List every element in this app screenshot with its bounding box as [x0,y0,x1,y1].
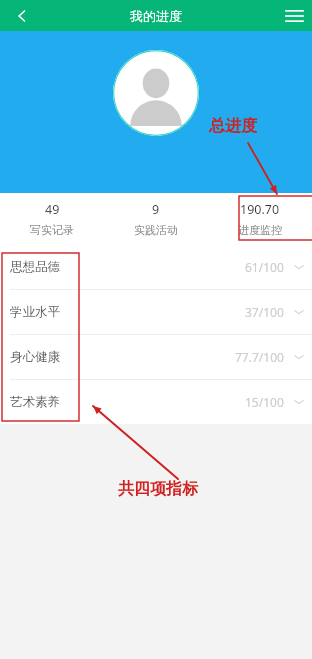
button[interactable]: 9 [104,193,208,245]
staticText: 写实记录 [30,223,74,237]
staticText: 15/100 [245,394,284,410]
button[interactable]: Back [0,0,44,31]
staticText: 共四项指标 [118,479,198,499]
staticText: 61/100 [245,259,284,275]
staticText: 190.70 [240,201,280,218]
staticText: 实践活动 [134,223,178,237]
button[interactable]: 190.70 [208,193,312,245]
staticText: 9 [152,201,160,218]
button[interactable]: 身心健康 [0,335,312,379]
button[interactable]: 49 [0,193,104,245]
staticText: 总进度 [209,116,257,136]
staticText: 身心健康 [10,349,60,365]
staticText: 我的进度 [130,8,182,24]
staticText: 艺术素养 [10,394,60,410]
button[interactable]: 艺术素养 [0,380,312,424]
button[interactable]: Avatar [113,50,199,136]
staticText: 37/100 [245,304,284,320]
button[interactable]: 思想品德 [0,245,312,289]
staticText: 进度监控 [238,223,282,237]
staticText: 49 [45,201,60,218]
staticText: 思想品德 [10,259,60,275]
staticText: 77.7/100 [235,349,284,365]
button[interactable]: Menu [276,0,312,31]
staticText: 学业水平 [10,304,60,320]
button[interactable]: 学业水平 [0,290,312,334]
